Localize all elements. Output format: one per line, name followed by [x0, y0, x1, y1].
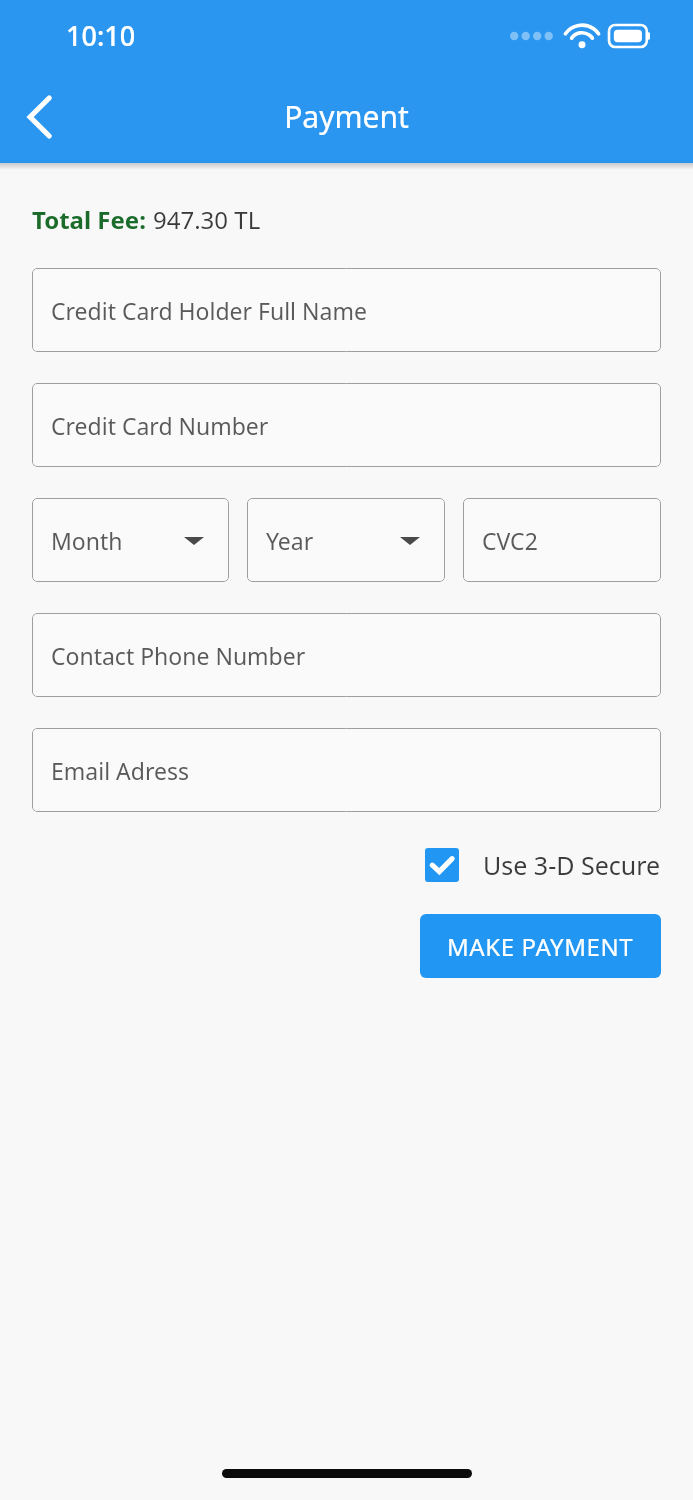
button[interactable]: MAKE PAYMENT [420, 914, 661, 978]
staticText: Use 3-D Secure [483, 848, 661, 882]
staticText: Email Adress [51, 755, 189, 786]
button[interactable]: Credit Card Number [32, 383, 661, 467]
staticText: 10:10 [66, 17, 136, 54]
button[interactable]: Contact Phone Number [32, 613, 661, 697]
staticText: 947.30 TL [153, 203, 261, 236]
staticText: Year [266, 525, 314, 556]
staticText: MAKE PAYMENT [447, 930, 634, 963]
staticText: Month [51, 525, 123, 556]
staticText: Credit Card Number [51, 410, 269, 441]
button[interactable]: Email Adress [32, 728, 661, 812]
button[interactable]: Credit Card Holder Full Name [32, 268, 661, 352]
button[interactable]: Month [32, 498, 229, 582]
staticText: Total Fee: [32, 203, 153, 236]
staticText: Payment [284, 96, 409, 137]
staticText: Credit Card Holder Full Name [51, 295, 367, 326]
button[interactable]: CVC2 [463, 498, 661, 582]
staticText: Contact Phone Number [51, 640, 306, 671]
staticText: CVC2 [482, 525, 538, 556]
button[interactable]: Year [247, 498, 445, 582]
button[interactable]: Use 3-D Secure [425, 848, 661, 882]
button[interactable]: Back [10, 87, 70, 147]
